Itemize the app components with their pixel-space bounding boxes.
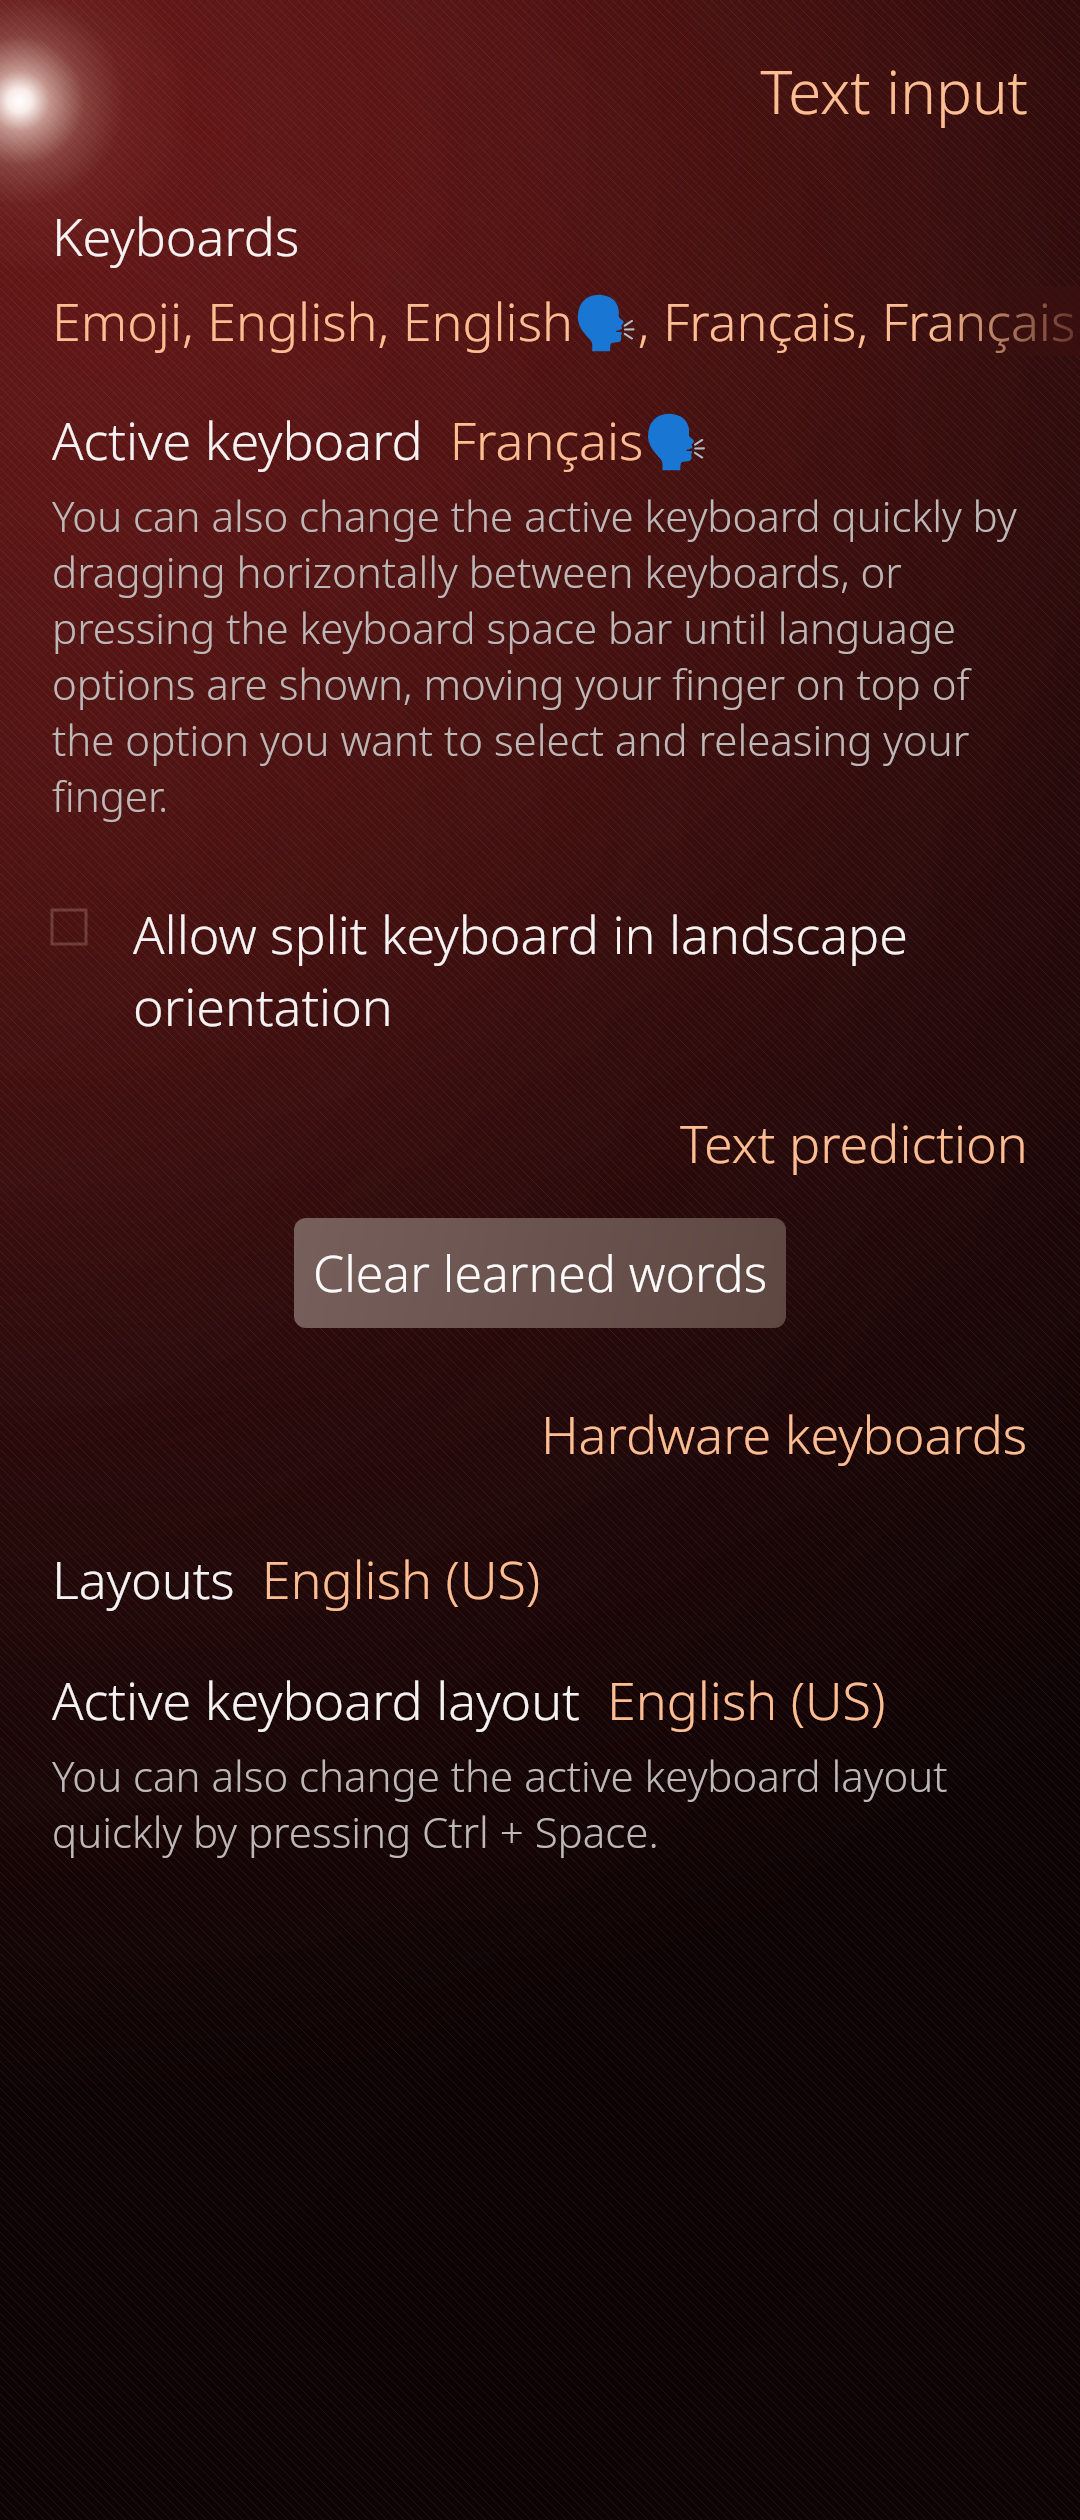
staticText: Layouts English (US) <box>52 1543 541 1614</box>
button[interactable]: Allow split keyboard checkbox <box>0 890 1080 1049</box>
staticText: Keyboards <box>52 200 300 271</box>
staticText: Text prediction <box>680 1107 1028 1178</box>
other: Allow split keyboard checkbox <box>52 910 86 944</box>
staticText: Hardware keyboards <box>541 1398 1028 1469</box>
button[interactable]: Layouts English (US) <box>0 1543 1080 1614</box>
staticText: Active keyboard Français🗣 <box>52 404 709 475</box>
button[interactable]: Clear learned words <box>294 1218 786 1328</box>
staticText: Active keyboard layout English (US) <box>52 1664 886 1735</box>
staticText: Clear learned words <box>313 1239 768 1307</box>
staticText: You can also change the active keyboard … <box>52 487 1028 824</box>
staticText: Text input <box>760 50 1028 132</box>
staticText: Allow split keyboard in landscape orient… <box>133 898 1020 1041</box>
staticText: You can also change the active keyboard … <box>52 1747 1028 1860</box>
staticText: Emoji, English, English🗣, Français, Fran… <box>52 285 1076 356</box>
